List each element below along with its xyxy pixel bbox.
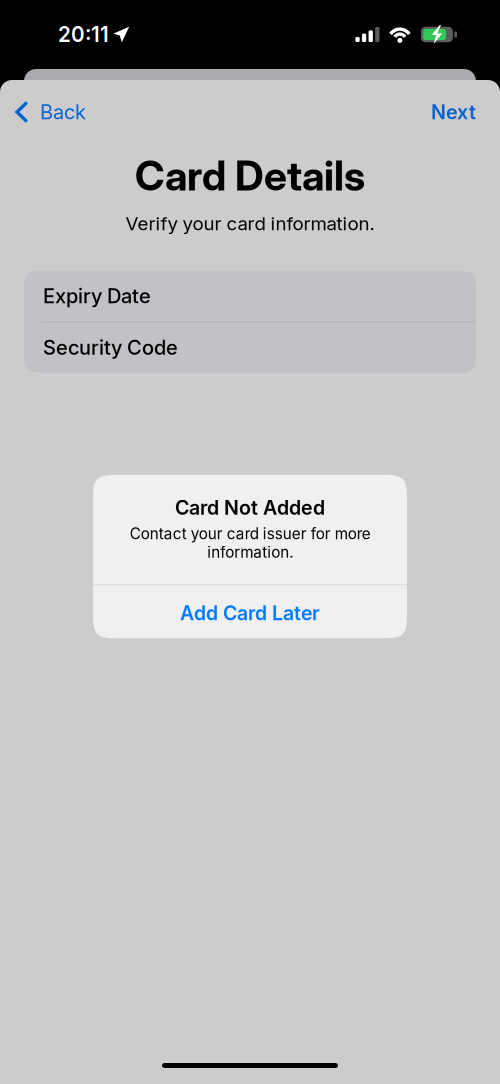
button[interactable]: Expiry Date (24, 271, 476, 321)
staticText: 20:11 (58, 22, 109, 47)
staticText: Add Card Later (180, 601, 320, 625)
staticText: Next (431, 100, 476, 124)
staticText: Back (40, 100, 86, 124)
staticText: Security Code (43, 335, 178, 360)
staticText: Card Not Added (175, 496, 325, 519)
staticText: Contact your card issuer for more inform… (129, 524, 370, 561)
staticText: Expiry Date (43, 284, 151, 308)
staticText: Verify your card information. (125, 212, 374, 235)
staticText: Card Details (135, 151, 365, 200)
button[interactable]: Next (407, 80, 500, 144)
button[interactable]: Security Code (24, 322, 476, 373)
button[interactable]: Back (0, 80, 98, 144)
button[interactable]: Add Card Later (93, 585, 407, 638)
